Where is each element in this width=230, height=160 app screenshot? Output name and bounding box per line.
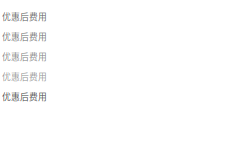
staticText: 优惠后费用 [2, 70, 47, 83]
staticText: 优惠后费用 [2, 90, 47, 103]
staticText: 优惠后费用 [2, 10, 47, 23]
staticText: 优惠后费用 [2, 50, 47, 63]
staticText: 优惠后费用 [2, 30, 47, 43]
